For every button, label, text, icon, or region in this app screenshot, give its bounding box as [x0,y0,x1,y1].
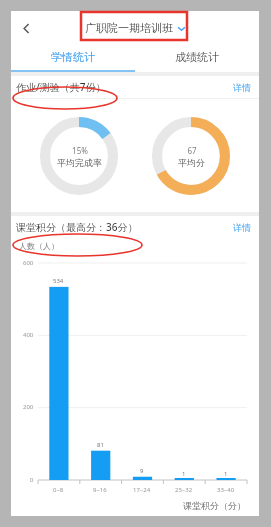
staticText: 详情 [233,82,251,93]
staticText: 400 [23,331,34,339]
staticText: 200 [23,403,34,411]
staticText: 25~32 [175,486,193,494]
staticText: 9 [140,467,144,475]
staticText: 课堂积分（最高分：36分） [16,220,138,234]
staticText: 15% [72,145,88,156]
staticText: 0 [30,476,34,484]
staticText: 600 [23,259,34,267]
staticText: 0~8 [53,486,64,494]
staticText: 1 [224,470,228,478]
staticText: 成绩统计 [175,50,219,64]
staticText: 课堂积分（分） [183,500,246,511]
staticText: 详情 [233,222,251,233]
button[interactable]: 详情 [231,220,253,235]
staticText: 9~16 [93,486,107,494]
button[interactable]: 详情 [231,80,253,95]
staticText: 1 [182,470,186,478]
button[interactable]: 学情统计 [11,44,135,70]
staticText: 534 [53,277,64,285]
staticText: 平均完成率 [57,157,102,168]
staticText: 人数（人） [19,241,59,251]
staticText: 33~40 [217,486,235,494]
staticText: 81 [97,441,104,449]
staticText: 17~24 [133,486,151,494]
staticText: 作业/测验（共7份） [16,80,106,94]
button[interactable]: 广职院一期培训班 [85,21,186,35]
staticText: 广职院一期培训班 [85,21,173,35]
staticText: 平均分 [178,157,205,168]
staticText: 学情统计 [51,50,95,64]
button[interactable]: Back [11,13,41,43]
staticText: 67 [187,145,197,156]
button[interactable]: 成绩统计 [135,44,259,70]
